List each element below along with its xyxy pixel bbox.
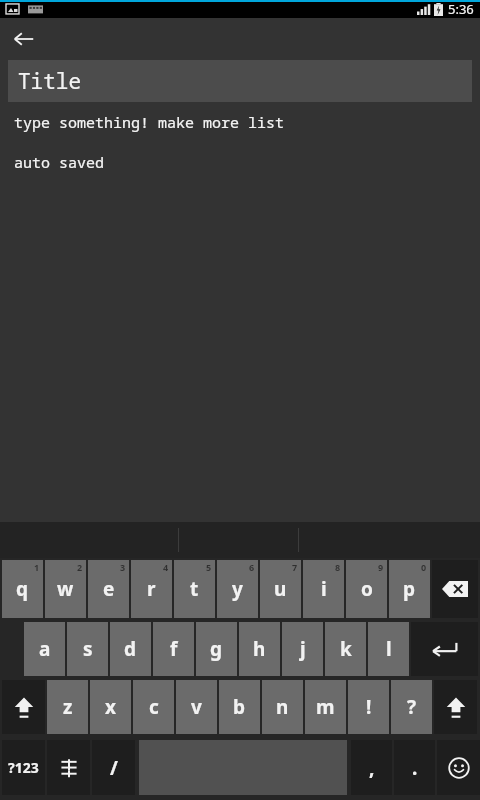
button[interactable]: /	[92, 740, 135, 795]
button[interactable]: x	[90, 680, 131, 734]
staticText: d	[124, 636, 137, 662]
button[interactable]: l	[368, 622, 409, 676]
staticText: j	[300, 636, 306, 662]
button[interactable]: Shift	[2, 680, 45, 734]
button[interactable]: t	[174, 560, 215, 618]
button[interactable]: b	[219, 680, 260, 734]
staticText: ?123	[8, 758, 39, 777]
staticText: /	[110, 755, 118, 781]
staticText: auto saved	[14, 152, 105, 172]
staticText: p	[403, 576, 416, 602]
staticText: l	[386, 636, 392, 662]
staticText: ?	[407, 694, 417, 720]
button[interactable]: v	[176, 680, 217, 734]
button[interactable]: Emoji	[437, 740, 480, 795]
staticText: t	[190, 576, 199, 602]
button[interactable]: Back	[0, 18, 48, 60]
staticText: w	[57, 576, 74, 602]
staticText: q	[16, 576, 29, 602]
button[interactable]: Shift	[434, 680, 477, 734]
staticText: m	[316, 694, 335, 720]
button[interactable]: n	[262, 680, 303, 734]
button[interactable]: j	[282, 622, 323, 676]
button[interactable]: i	[303, 560, 344, 618]
staticText: i	[321, 576, 327, 602]
button[interactable]: g	[196, 622, 237, 676]
staticText: f	[170, 636, 178, 662]
staticText: Title	[18, 67, 81, 96]
staticText: n	[276, 694, 289, 720]
staticText: 5	[206, 561, 212, 573]
button[interactable]: z	[47, 680, 88, 734]
staticText: v	[191, 694, 202, 720]
staticText: ,	[369, 755, 375, 781]
staticText: 6	[249, 561, 255, 573]
staticText: c	[149, 694, 159, 720]
staticText: a	[39, 636, 51, 662]
staticText: y	[232, 576, 243, 602]
button[interactable]: Enter	[411, 622, 478, 676]
button[interactable]: Backspace	[432, 560, 478, 618]
staticText: 7	[292, 561, 298, 573]
staticText: k	[340, 636, 352, 662]
button[interactable]: m	[305, 680, 346, 734]
staticText: 2	[77, 561, 83, 573]
button[interactable]: Title	[8, 60, 472, 102]
staticText: 3	[120, 561, 126, 573]
staticText: !	[366, 694, 372, 720]
button[interactable]: k	[325, 622, 366, 676]
staticText: 4	[163, 561, 169, 573]
staticText: type something! make more list	[14, 112, 285, 132]
staticText: 1	[34, 561, 40, 573]
staticText: 8	[335, 561, 341, 573]
staticText: g	[210, 636, 223, 662]
staticText: b	[233, 694, 246, 720]
staticText: h	[253, 636, 266, 662]
button[interactable]: a	[24, 622, 65, 676]
button[interactable]: o	[346, 560, 387, 618]
staticText: z	[63, 694, 73, 720]
button[interactable]: ,	[351, 740, 392, 795]
button[interactable]: e	[88, 560, 129, 618]
button[interactable]: f	[153, 622, 194, 676]
button[interactable]: !	[348, 680, 389, 734]
staticText: 9	[378, 561, 384, 573]
button[interactable]: c	[133, 680, 174, 734]
staticText: 5:36	[448, 0, 474, 18]
button[interactable]: type something! make more list	[0, 112, 480, 172]
staticText: e	[103, 576, 115, 602]
staticText: u	[274, 576, 287, 602]
button[interactable]: h	[239, 622, 280, 676]
staticText: s	[83, 636, 93, 662]
staticText: o	[361, 576, 373, 602]
staticText: r	[147, 576, 156, 602]
button[interactable]: q	[2, 560, 43, 618]
staticText: .	[412, 755, 418, 781]
staticText: 0	[421, 561, 427, 573]
button[interactable]: u	[260, 560, 301, 618]
button[interactable]: p	[389, 560, 430, 618]
button[interactable]: ?	[391, 680, 432, 734]
button[interactable]: Change language	[47, 740, 90, 795]
button[interactable]: y	[217, 560, 258, 618]
button[interactable]: d	[110, 622, 151, 676]
staticText: x	[105, 694, 116, 720]
button[interactable]: s	[67, 622, 108, 676]
button[interactable]: .	[394, 740, 435, 795]
button[interactable]: r	[131, 560, 172, 618]
button[interactable]: w	[45, 560, 86, 618]
button[interactable]: ?123	[2, 740, 45, 795]
